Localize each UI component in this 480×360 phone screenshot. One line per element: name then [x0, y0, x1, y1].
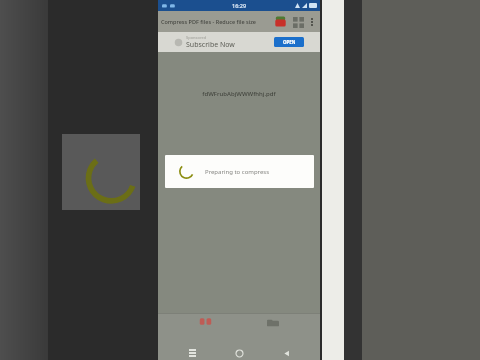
- staticText: Compress PDF files - Reduce file size: [161, 18, 272, 25]
- button[interactable]: Files: [253, 317, 293, 339]
- button[interactable]: Grid view: [291, 15, 305, 29]
- button[interactable]: Back: [273, 346, 299, 360]
- button[interactable]: Compress: [185, 317, 225, 339]
- button[interactable]: More options: [307, 14, 317, 30]
- button[interactable]: OPEN: [274, 37, 304, 47]
- button[interactable]: App icon: [274, 15, 287, 28]
- staticText: Sponsored: [186, 35, 207, 40]
- staticText: 16:29: [232, 2, 247, 9]
- staticText: OPEN: [283, 39, 296, 45]
- button[interactable]: Home: [226, 346, 252, 360]
- button[interactable]: Sponsored: [158, 32, 320, 52]
- staticText: Preparing to compress: [205, 168, 270, 176]
- staticText: Subscribe Now: [186, 40, 235, 50]
- staticText: fdWFrubAbjWWWfhhj.pdf: [202, 90, 276, 98]
- button[interactable]: Recent apps: [179, 346, 205, 360]
